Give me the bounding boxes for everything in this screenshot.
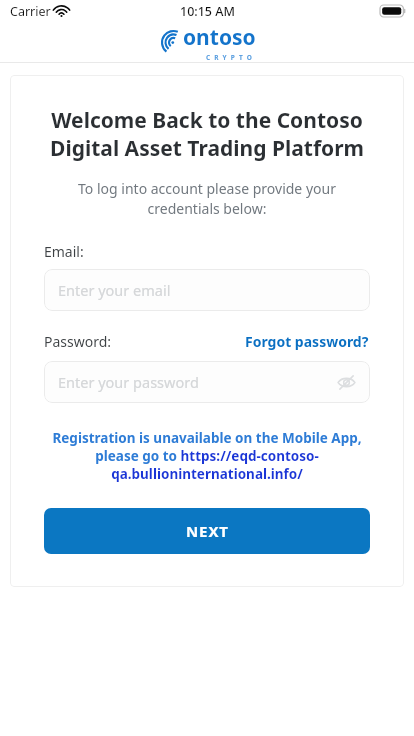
button[interactable]: Enter your email [44,269,370,311]
staticText: NEXT [186,521,229,541]
staticText: Carrier [10,3,51,20]
staticText: Registration is unavailable on the Mobil… [44,429,370,483]
button[interactable]: Enter your password [44,361,370,403]
staticText: Enter your email [58,280,171,300]
staticText: C R Y P T O [206,53,254,62]
staticText: Enter your password [58,372,199,392]
staticText: Password: [44,332,112,351]
button[interactable]: Registration is unavailable on the Mobil… [44,429,370,483]
button[interactable]: NEXT [44,508,370,554]
staticText: 10:15 AM [180,3,235,20]
staticText: ontoso [183,23,256,52]
staticText: Email: [44,242,84,261]
staticText: Welcome Back to the Contoso Digital Asse… [44,106,370,162]
button[interactable]: Forgot password? [244,330,370,353]
button[interactable]: Show password [334,370,358,394]
staticText: Forgot password? [245,332,369,351]
staticText: To log into account please provide your … [46,179,368,219]
